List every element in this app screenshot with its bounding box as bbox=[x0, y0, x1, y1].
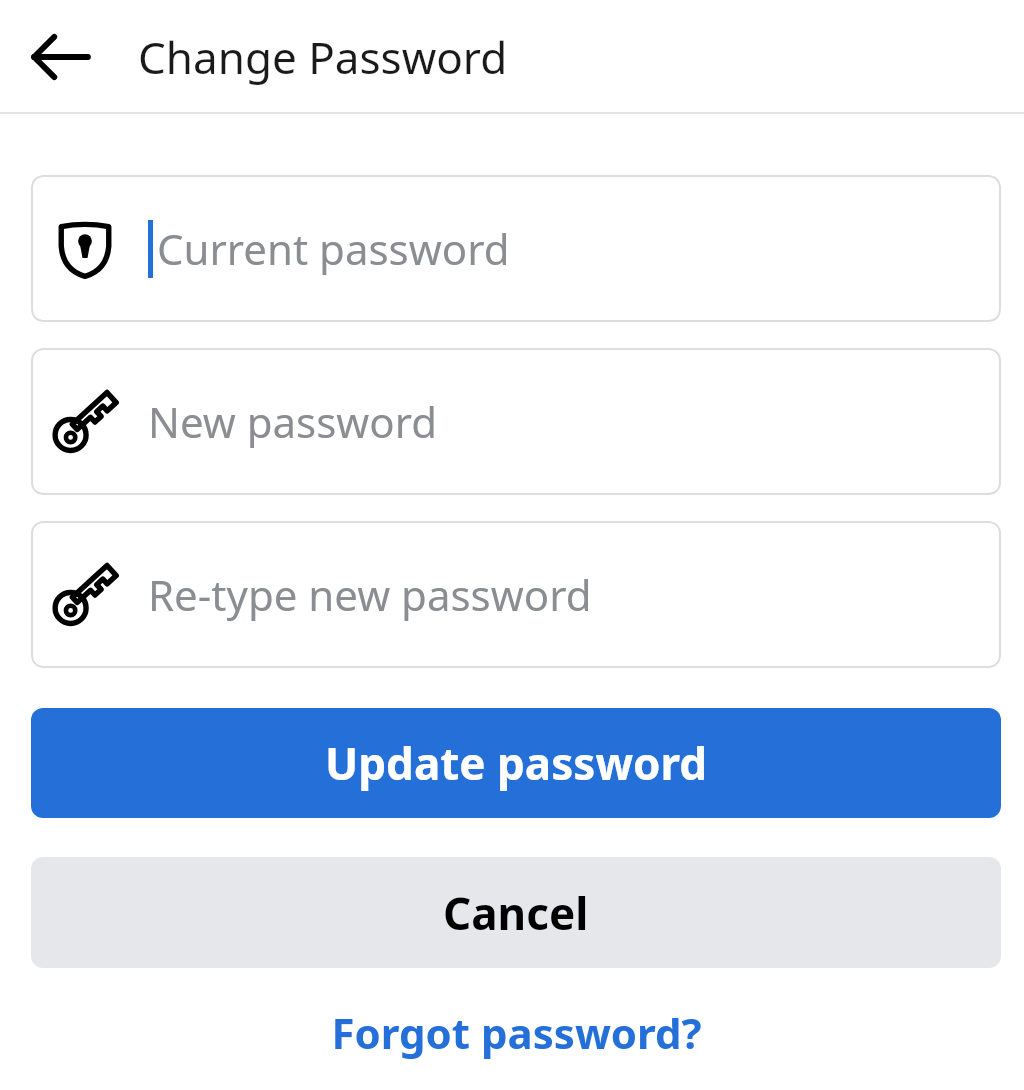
button[interactable]: Forgot password? bbox=[31, 995, 1001, 1069]
staticText: Current password bbox=[157, 220, 510, 277]
button[interactable]: Re-type new password bbox=[31, 521, 1001, 668]
staticText: Re-type new password bbox=[148, 566, 592, 623]
button[interactable]: New password bbox=[31, 348, 1001, 495]
button[interactable]: Update password bbox=[31, 708, 1001, 818]
staticText: New password bbox=[148, 393, 438, 450]
button[interactable]: Current password bbox=[31, 175, 1001, 322]
staticText: Forgot password? bbox=[331, 1004, 702, 1061]
button[interactable]: Cancel bbox=[31, 857, 1001, 968]
staticText: Cancel bbox=[443, 883, 589, 943]
staticText: Update password bbox=[325, 733, 708, 793]
staticText: Change Password bbox=[138, 27, 508, 87]
button[interactable]: Back bbox=[30, 26, 92, 88]
